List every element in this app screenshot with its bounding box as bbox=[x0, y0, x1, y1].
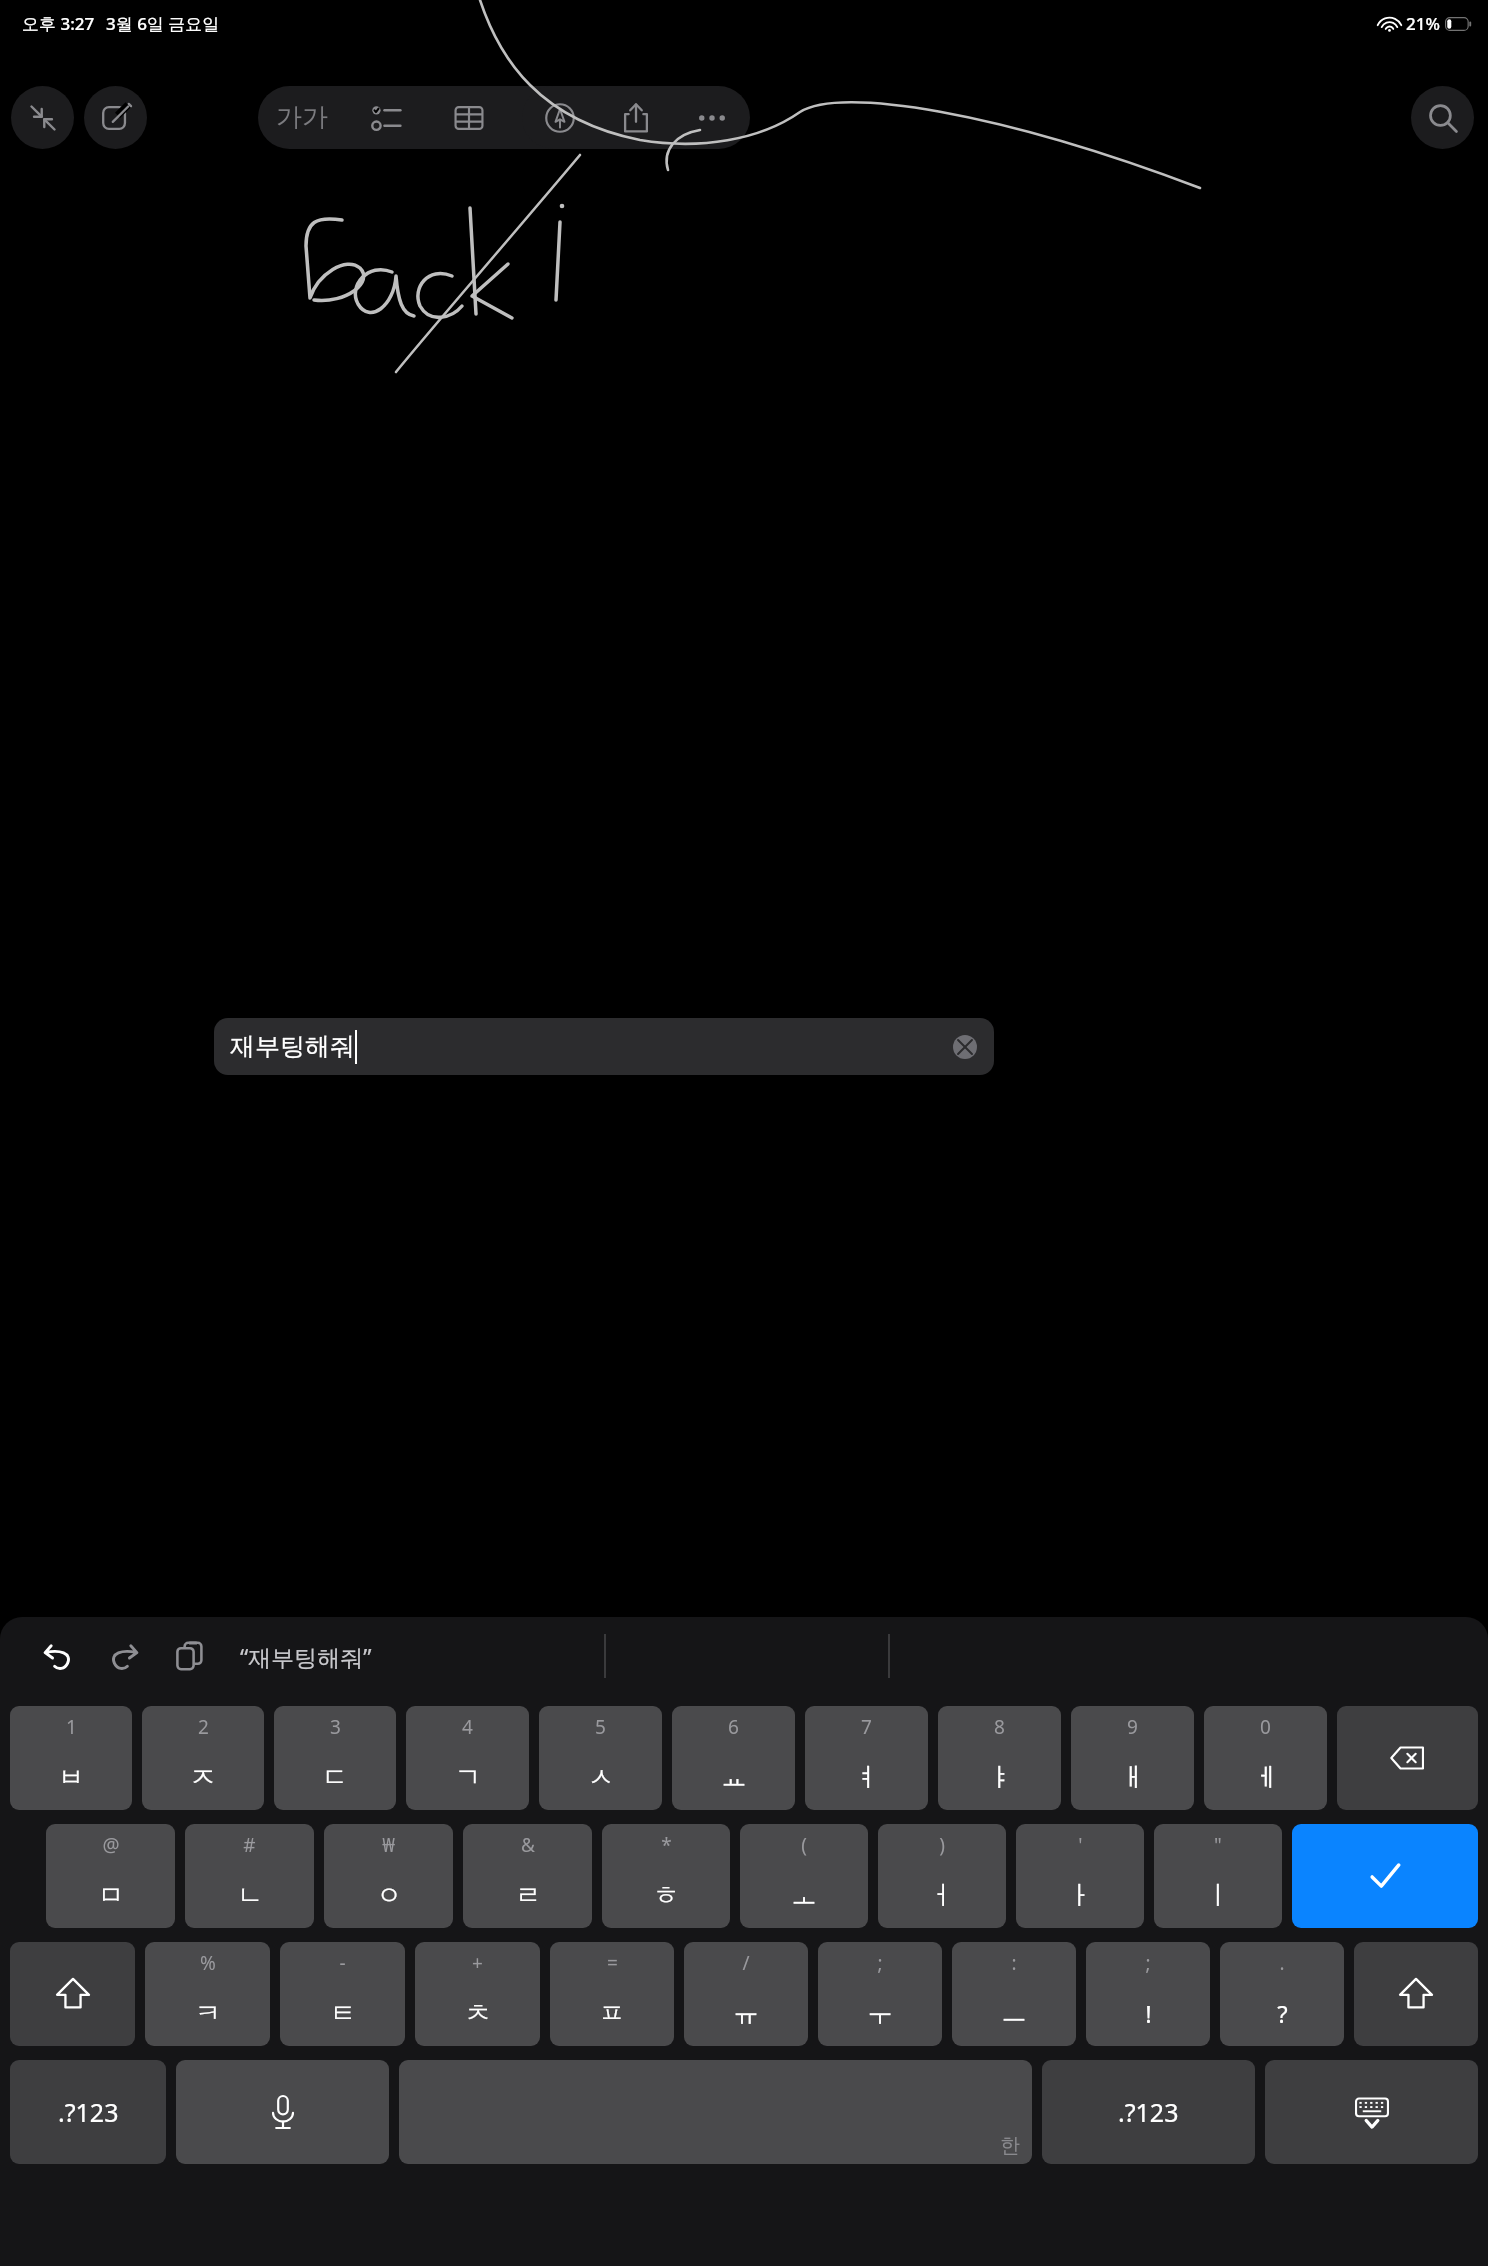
button[interactable]: 4 bbox=[406, 1706, 529, 1810]
button[interactable]: Redo bbox=[96, 1628, 152, 1684]
button[interactable]: & bbox=[463, 1824, 592, 1928]
button[interactable]: = bbox=[550, 1942, 674, 2046]
button[interactable]: More bbox=[674, 86, 750, 149]
button[interactable]: / bbox=[684, 1942, 808, 2046]
staticText: ; bbox=[1145, 1950, 1151, 1976]
button[interactable]: 재부팅해줘 bbox=[214, 1018, 994, 1075]
staticText: ₩ bbox=[382, 1832, 395, 1858]
button[interactable]: Hide keyboard bbox=[1265, 2060, 1478, 2164]
staticText: ㄴ bbox=[237, 1879, 263, 1912]
staticText: ㅂ bbox=[58, 1761, 84, 1794]
staticText: 1 bbox=[66, 1714, 77, 1740]
button[interactable]: 2 bbox=[142, 1706, 264, 1810]
button[interactable]: * bbox=[602, 1824, 730, 1928]
button[interactable]: Search bbox=[1411, 86, 1474, 149]
staticText: ㄱ bbox=[455, 1761, 481, 1794]
button[interactable]: Confirm bbox=[1292, 1824, 1478, 1928]
button[interactable]: 7 bbox=[805, 1706, 928, 1810]
staticText: ) bbox=[939, 1832, 945, 1858]
button[interactable]: Clear text bbox=[950, 1032, 980, 1062]
staticText: 21% bbox=[1406, 12, 1440, 35]
staticText: ( bbox=[801, 1832, 807, 1858]
button[interactable]: Voice input bbox=[176, 2060, 389, 2164]
button[interactable]: 9 bbox=[1071, 1706, 1194, 1810]
staticText: 가가 bbox=[276, 101, 328, 134]
staticText: ㅎ bbox=[653, 1879, 679, 1912]
staticText: 오후 3:27 bbox=[22, 12, 95, 35]
button[interactable]: Undo bbox=[30, 1628, 86, 1684]
staticText: 3 bbox=[330, 1714, 341, 1740]
staticText: ㅁ bbox=[98, 1879, 124, 1912]
button[interactable]: Markup bbox=[522, 86, 598, 149]
staticText: * bbox=[661, 1832, 672, 1858]
button[interactable]: % bbox=[145, 1942, 270, 2046]
button[interactable]: ; bbox=[1086, 1942, 1210, 2046]
staticText: ㅑ bbox=[987, 1761, 1013, 1794]
staticText: 7 bbox=[861, 1714, 872, 1740]
button[interactable]: 1 bbox=[10, 1706, 132, 1810]
staticText: ㅗ bbox=[791, 1879, 817, 1912]
button[interactable]: ' bbox=[1016, 1824, 1144, 1928]
staticText: ㅊ bbox=[465, 1997, 491, 2030]
button[interactable]: Attach bbox=[510, 86, 592, 149]
staticText: 0 bbox=[1260, 1714, 1271, 1740]
staticText: “재부팅해줘” bbox=[240, 1641, 372, 1672]
button[interactable]: + bbox=[415, 1942, 540, 2046]
staticText: ㅠ bbox=[733, 1997, 759, 2030]
staticText: .?123 bbox=[58, 2095, 119, 2129]
staticText: = bbox=[607, 1950, 618, 1976]
button[interactable]: Shift bbox=[10, 1942, 135, 2046]
staticText: .?123 bbox=[1118, 2095, 1179, 2129]
button[interactable]: Backspace bbox=[1337, 1706, 1478, 1810]
button[interactable]: 6 bbox=[672, 1706, 795, 1810]
button[interactable]: 5 bbox=[539, 1706, 662, 1810]
staticText: ㅔ bbox=[1253, 1761, 1279, 1794]
button[interactable]: .?123 bbox=[1042, 2060, 1255, 2164]
staticText: ㅍ bbox=[599, 1997, 625, 2030]
button[interactable]: ₩ bbox=[324, 1824, 453, 1928]
staticText: ㅡ bbox=[1001, 1997, 1027, 2030]
button[interactable]: : bbox=[952, 1942, 1076, 2046]
staticText: / bbox=[742, 1950, 750, 1976]
staticText: ㅕ bbox=[854, 1761, 880, 1794]
button[interactable]: 가가 bbox=[258, 86, 346, 149]
button[interactable]: Checklist bbox=[346, 86, 428, 149]
staticText: 4 bbox=[462, 1714, 473, 1740]
button[interactable]: .?123 bbox=[10, 2060, 166, 2164]
staticText: ㅌ bbox=[330, 1997, 356, 2030]
button[interactable]: # bbox=[185, 1824, 314, 1928]
button[interactable]: ; bbox=[818, 1942, 942, 2046]
staticText: ㅅ bbox=[588, 1761, 614, 1794]
button[interactable]: 3 bbox=[274, 1706, 396, 1810]
staticText: ㅣ bbox=[1205, 1879, 1231, 1912]
button[interactable]: " bbox=[1154, 1824, 1282, 1928]
button[interactable]: Compose bbox=[84, 86, 147, 149]
button[interactable]: 0 bbox=[1204, 1706, 1327, 1810]
button[interactable]: Share bbox=[598, 86, 674, 149]
button[interactable]: Table bbox=[428, 86, 510, 149]
staticText: ㄹ bbox=[515, 1879, 541, 1912]
staticText: ㅛ bbox=[721, 1761, 747, 1794]
staticText: # bbox=[243, 1832, 256, 1858]
button[interactable]: Collapse bbox=[11, 86, 74, 149]
button[interactable]: ( bbox=[740, 1824, 868, 1928]
button[interactable]: . bbox=[1220, 1942, 1344, 2046]
staticText: ㅇ bbox=[376, 1879, 402, 1912]
button[interactable]: Paste bbox=[162, 1628, 218, 1684]
staticText: ㅜ bbox=[867, 1997, 893, 2030]
button[interactable]: @ bbox=[46, 1824, 175, 1928]
staticText: % bbox=[200, 1950, 216, 1976]
button[interactable]: ) bbox=[878, 1824, 1006, 1928]
button[interactable]: 8 bbox=[938, 1706, 1061, 1810]
button[interactable]: Shift bbox=[1354, 1942, 1478, 2046]
staticText: ' bbox=[1078, 1832, 1083, 1858]
staticText: @ bbox=[102, 1832, 120, 1858]
staticText: ; bbox=[877, 1950, 883, 1976]
button[interactable]: “재부팅해줘” bbox=[240, 1628, 372, 1684]
staticText: ㅋ bbox=[195, 1997, 221, 2030]
staticText: ㅐ bbox=[1120, 1761, 1146, 1794]
staticText: - bbox=[339, 1950, 346, 1976]
staticText: 2 bbox=[198, 1714, 209, 1740]
button[interactable]: - bbox=[280, 1942, 405, 2046]
